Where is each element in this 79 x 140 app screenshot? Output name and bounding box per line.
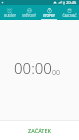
staticText: ČASOVAČ: [62, 14, 77, 18]
button[interactable]: BUDÍKY: [0, 5, 19, 20]
button[interactable]: SVĚTOVÝ ČAS: [19, 5, 39, 20]
staticText: 20:46: [66, 0, 77, 5]
button[interactable]: ČASOVAČ: [59, 5, 79, 20]
button[interactable]: ZAČÁTEK: [0, 121, 79, 140]
staticText: 00: [52, 68, 60, 78]
staticText: BUDÍKY: [4, 14, 16, 18]
staticText: SVĚTOVÝ ČAS: [19, 14, 39, 18]
button[interactable]: STOPKY: [39, 5, 59, 20]
staticText: 00:00: [14, 58, 52, 78]
staticText: ZAČÁTEK: [28, 127, 51, 134]
staticText: STOPKY: [43, 14, 55, 18]
